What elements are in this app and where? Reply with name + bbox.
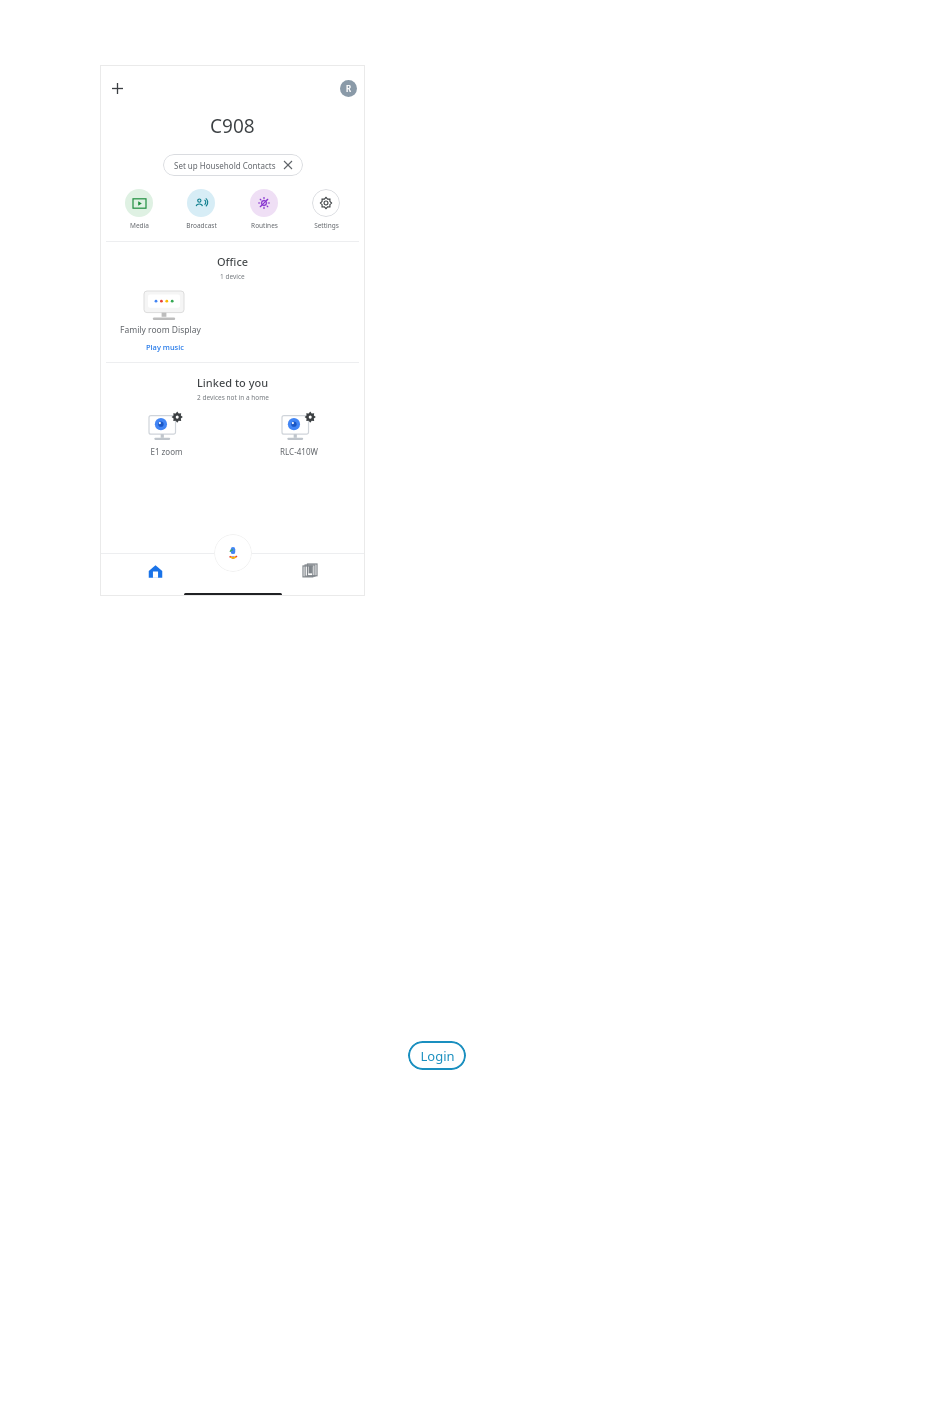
button[interactable]: Routines	[239, 189, 289, 230]
staticText: Media	[130, 221, 149, 230]
staticText: Office	[217, 254, 249, 269]
staticText: E1 zoom	[150, 446, 183, 457]
button[interactable]: Login	[408, 1041, 466, 1070]
staticText: 2 devices not in a home	[197, 393, 269, 402]
button[interactable]: Account	[340, 80, 357, 97]
staticText: Play music	[146, 342, 184, 352]
staticText: Routines	[251, 221, 278, 230]
staticText: Settings	[314, 221, 339, 230]
staticText: C908	[210, 113, 255, 139]
button[interactable]: Family room Display	[120, 291, 220, 352]
button[interactable]: Google Assistant	[214, 534, 252, 572]
staticText: R	[346, 83, 352, 94]
staticText: Family room Display	[120, 324, 201, 336]
button[interactable]: Home	[100, 554, 210, 588]
staticText: Broadcast	[186, 221, 217, 230]
staticText: Set up Household Contacts	[174, 160, 276, 171]
button[interactable]: Set up Household Contacts	[163, 154, 303, 176]
button[interactable]: Feed	[254, 554, 365, 588]
button[interactable]: Add device	[103, 74, 131, 102]
button[interactable]: Broadcast	[176, 189, 226, 230]
staticText: Login	[420, 1047, 455, 1065]
staticText: 1 device	[220, 272, 245, 281]
button[interactable]: Media	[114, 189, 164, 230]
staticText: RLC-410W	[280, 446, 318, 457]
staticText: Linked to you	[197, 375, 269, 390]
button[interactable]: E1 zoom	[100, 412, 232, 457]
button[interactable]: RLC-410W	[232, 412, 365, 457]
button[interactable]: Settings	[301, 189, 351, 230]
